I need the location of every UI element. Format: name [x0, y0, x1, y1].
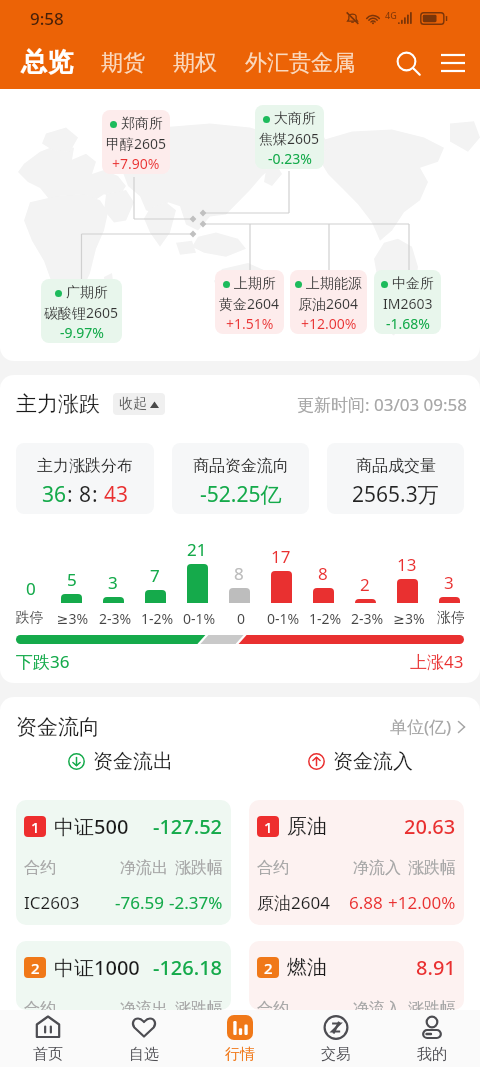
staticText: 21	[187, 538, 207, 561]
staticText: 合约	[257, 999, 289, 1010]
staticText: 总览	[21, 46, 73, 79]
button[interactable]: 资金流入	[240, 749, 480, 774]
staticText: 2	[360, 573, 370, 596]
staticText: +7.90%	[112, 154, 160, 173]
staticText: 17	[271, 545, 291, 568]
staticText: 主力涨跌分布	[37, 456, 133, 476]
staticText: 合约	[24, 858, 56, 878]
staticText: 8	[79, 480, 92, 509]
staticText: IM2603	[383, 294, 433, 313]
staticText: 净流出	[120, 858, 168, 878]
staticText: 涨跌幅	[175, 858, 223, 878]
staticText: 净流入	[353, 858, 401, 878]
staticText: 首页	[33, 1045, 63, 1064]
button[interactable]: Menu	[430, 40, 476, 86]
staticText: 下跌36	[16, 650, 70, 673]
staticText: 1-2%	[304, 609, 346, 628]
staticText: 广期所	[66, 284, 108, 302]
staticText: -126.18	[153, 954, 223, 981]
staticText: -2.37%	[169, 891, 223, 914]
staticText: 0	[220, 609, 262, 628]
staticText: 行情	[225, 1045, 255, 1064]
button[interactable]: 大商所	[255, 105, 324, 169]
staticText: 7	[150, 564, 160, 587]
staticText: 涨跌幅	[408, 999, 456, 1010]
staticText: IC2603	[24, 891, 80, 914]
staticText: 燃油	[287, 955, 327, 980]
staticText: 20.63	[404, 813, 456, 840]
staticText: 2-3%	[346, 609, 388, 628]
button[interactable]: 主力涨跌分布	[16, 443, 154, 514]
button[interactable]: 广期所	[41, 279, 122, 343]
staticText: :	[67, 480, 79, 509]
button[interactable]: 首页	[0, 1010, 96, 1067]
button[interactable]: 期货	[87, 49, 159, 77]
button[interactable]: Search	[386, 41, 430, 85]
staticText: 1-2%	[136, 609, 178, 628]
button[interactable]: 2	[249, 941, 464, 1010]
button[interactable]: 收起	[113, 393, 165, 415]
staticText: 资金流向	[16, 714, 100, 740]
button[interactable]: 我的	[384, 1010, 480, 1067]
staticText: 2	[31, 958, 40, 978]
staticText: 自选	[129, 1045, 159, 1064]
button[interactable]: 商品成交量	[327, 443, 464, 514]
staticText: -52.25亿	[200, 480, 282, 509]
button[interactable]: 自选	[96, 1010, 192, 1067]
staticText: 焦煤2605	[259, 129, 320, 148]
staticText: 8	[318, 562, 328, 585]
staticText: 1	[264, 817, 273, 837]
staticText: -127.52	[153, 813, 223, 840]
staticText: 碳酸锂2605	[44, 303, 119, 322]
staticText: 合约	[24, 999, 56, 1010]
staticText: 净流入	[353, 999, 401, 1010]
button[interactable]: 中金所	[374, 270, 441, 334]
staticText: 上期能源	[306, 275, 362, 293]
staticText: 0	[26, 577, 36, 600]
button[interactable]: 期权	[159, 49, 231, 77]
staticText: 黄金2604	[219, 294, 280, 313]
staticText: 0-1%	[178, 609, 220, 628]
staticText: 2565.3万	[352, 480, 439, 509]
button[interactable]: 1	[16, 800, 231, 925]
staticText: 我的	[417, 1045, 447, 1064]
button[interactable]: 郑商所	[102, 110, 170, 174]
staticText: 中证500	[54, 813, 129, 840]
staticText: 原油	[287, 814, 327, 839]
staticText: 跌停	[8, 609, 51, 627]
button[interactable]: 资金流出	[0, 749, 240, 774]
staticText: 原油2604	[298, 294, 359, 313]
staticText: 2-3%	[94, 609, 136, 628]
button[interactable]: 交易	[288, 1010, 384, 1067]
staticText: ≥3%	[388, 609, 430, 628]
staticText: 上涨43	[410, 650, 464, 673]
staticText: 5	[67, 568, 77, 591]
staticText: 净流出	[120, 999, 168, 1010]
staticText: -9.97%	[60, 323, 104, 342]
button[interactable]: 2	[16, 941, 231, 1010]
staticText: +12.00%	[301, 314, 357, 333]
staticText: 收起	[119, 395, 147, 413]
button[interactable]: 行情	[192, 1010, 288, 1067]
button[interactable]: 1	[249, 800, 464, 925]
staticText: 涨跌幅	[408, 858, 456, 878]
staticText: 期货	[101, 49, 145, 77]
staticText: 涨跌幅	[175, 999, 223, 1010]
button[interactable]: 上期能源	[290, 270, 367, 334]
staticText: 0-1%	[262, 609, 304, 628]
staticText: 合约	[257, 858, 289, 878]
staticText: 13	[397, 553, 417, 576]
button[interactable]: 外汇贵金属	[231, 49, 369, 77]
staticText: 上期所	[234, 275, 276, 293]
staticText: 主力涨跌	[16, 391, 100, 417]
staticText: 6.88	[349, 891, 383, 914]
button[interactable]: 总览	[0, 46, 87, 79]
staticText: 大商所	[274, 110, 316, 128]
button[interactable]: 上期所	[215, 270, 284, 334]
button[interactable]: 单位(亿)	[390, 711, 466, 742]
staticText: 36	[42, 480, 67, 509]
button[interactable]: 商品资金流向	[172, 443, 309, 514]
staticText: -76.59	[115, 891, 164, 914]
staticText: 更新时间: 03/03 09:58	[297, 393, 468, 416]
staticText: 交易	[321, 1045, 351, 1064]
